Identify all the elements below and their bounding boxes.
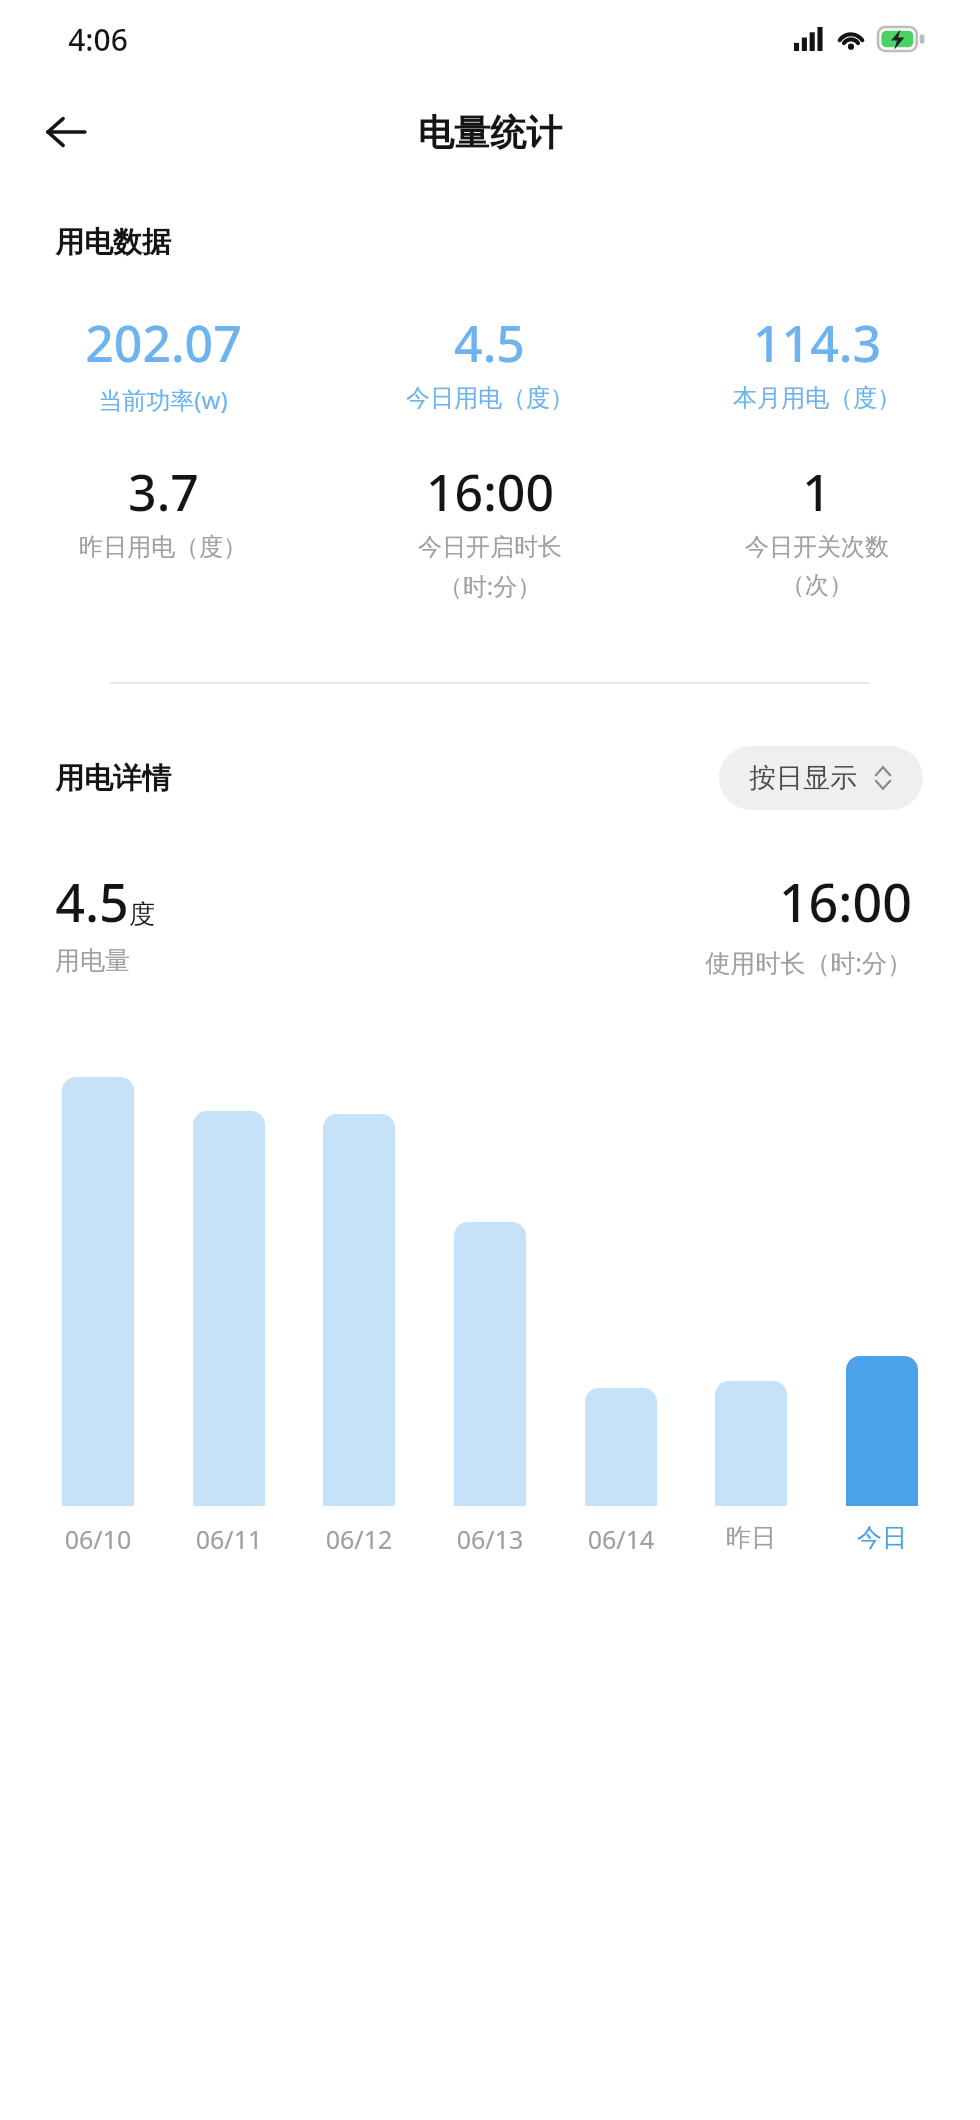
staticText: 06/12 [323, 1522, 395, 1556]
staticText: 按日显示 [749, 761, 857, 795]
staticText: 今日用电（度） [406, 383, 574, 413]
staticText: 3.7 [128, 458, 199, 526]
staticText: 06/14 [585, 1522, 657, 1556]
staticText: 06/10 [62, 1522, 134, 1556]
staticText: 114.3 [753, 309, 881, 377]
button[interactable]: Back [30, 96, 102, 168]
staticText: 昨日 [715, 1522, 787, 1553]
staticText: 1 [802, 458, 831, 526]
staticText: 06/13 [454, 1522, 526, 1556]
staticText: 当前功率(w) [98, 383, 228, 416]
staticText: 16:00 [778, 866, 912, 937]
staticText: 今日开关次数 （次） [745, 532, 889, 601]
staticText: 今日 [846, 1522, 918, 1553]
staticText: 4.5 [454, 309, 525, 377]
staticText: 本月用电（度） [733, 383, 901, 413]
staticText: 使用时长（时:分） [705, 945, 912, 979]
staticText: 16:00 [426, 458, 554, 526]
staticText: 度 [129, 898, 155, 931]
button[interactable] [454, 1222, 526, 1506]
staticText: 今日开启时长 （时:分） [418, 532, 562, 602]
staticText: 昨日用电（度） [79, 532, 247, 562]
staticText: 用电数据 [55, 224, 980, 261]
button[interactable] [715, 1381, 787, 1506]
button[interactable]: 按日显示 [719, 746, 923, 810]
staticText: 4:06 [68, 19, 128, 60]
staticText: 06/11 [193, 1522, 265, 1556]
staticText: 用电详情 [55, 760, 171, 797]
staticText: 4.5 [55, 866, 129, 937]
button[interactable] [846, 1356, 918, 1506]
staticText: 202.07 [85, 309, 242, 377]
button[interactable] [585, 1388, 657, 1506]
staticText: 用电量 [55, 945, 130, 976]
staticText: 电量统计 [418, 110, 562, 155]
